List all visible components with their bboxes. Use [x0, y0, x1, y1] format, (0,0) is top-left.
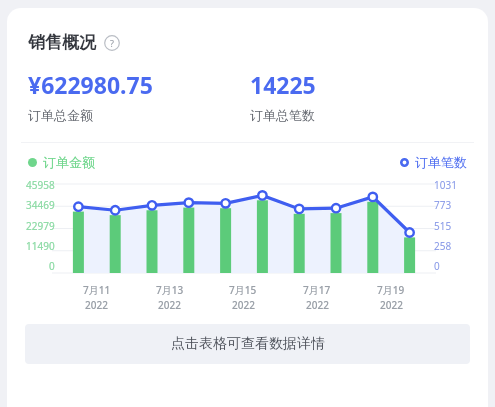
- staticText: 45958: [26, 178, 55, 192]
- button[interactable]: 销售概况: [28, 32, 120, 53]
- button[interactable]: 订单金额: [28, 154, 95, 170]
- staticText: 订单总笔数: [250, 107, 315, 123]
- staticText: 2022: [85, 298, 108, 312]
- staticText: 7月17: [303, 283, 331, 297]
- staticText: 7月19: [377, 283, 405, 297]
- staticText: 34469: [26, 198, 55, 212]
- button[interactable]: 点击表格可查看数据详情: [25, 324, 470, 364]
- staticText: 7月13: [156, 283, 184, 297]
- staticText: 点击表格可查看数据详情: [171, 335, 325, 353]
- staticText: 11490: [26, 239, 55, 253]
- staticText: 2022: [306, 298, 329, 312]
- staticText: 2022: [232, 298, 255, 312]
- staticText: 订单总金额: [28, 107, 93, 123]
- button[interactable]: 订单笔数: [400, 154, 467, 170]
- staticText: ¥622980.75: [28, 69, 153, 100]
- staticText: ?: [110, 37, 114, 49]
- staticText: 773: [434, 198, 452, 212]
- staticText: 2022: [158, 298, 181, 312]
- staticText: 7月11: [83, 283, 111, 297]
- staticText: 2022: [380, 298, 403, 312]
- staticText: 1031: [434, 178, 457, 192]
- staticText: 258: [434, 239, 452, 253]
- staticText: 销售概况: [28, 32, 96, 53]
- staticText: 22979: [26, 219, 55, 233]
- button[interactable]: 45958: [7, 176, 488, 314]
- staticText: 14225: [250, 69, 316, 100]
- staticText: 订单笔数: [415, 154, 467, 170]
- staticText: 0: [434, 259, 440, 273]
- button[interactable]: Help: [104, 35, 120, 51]
- staticText: 0: [49, 259, 55, 273]
- staticText: 7月15: [229, 283, 257, 297]
- staticText: 订单金额: [43, 154, 95, 170]
- staticText: 515: [434, 219, 452, 233]
